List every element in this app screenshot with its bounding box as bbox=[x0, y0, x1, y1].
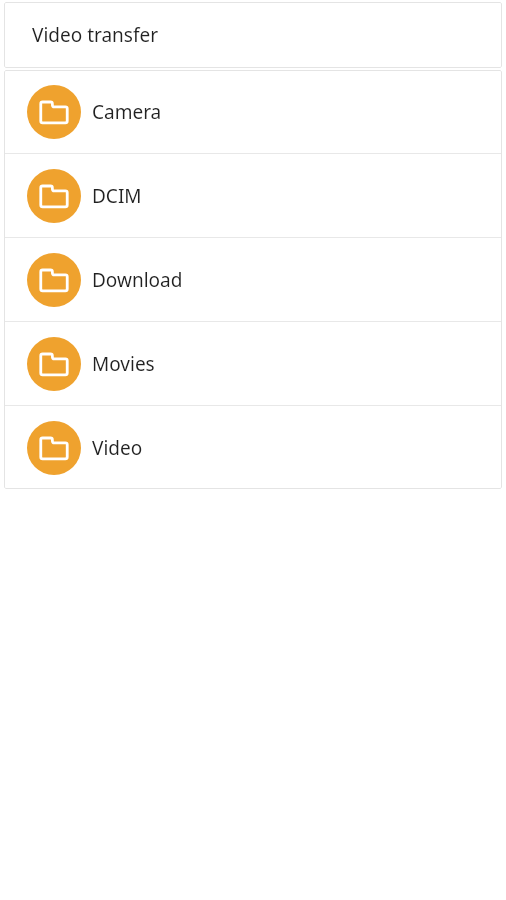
button[interactable]: Video bbox=[4, 406, 502, 489]
staticText: Movies bbox=[92, 351, 155, 377]
button[interactable]: Download bbox=[4, 238, 502, 321]
staticText: Video bbox=[92, 435, 143, 461]
button[interactable]: Camera bbox=[4, 70, 502, 153]
button[interactable]: Video transfer bbox=[4, 2, 502, 68]
staticText: Video transfer bbox=[32, 22, 159, 48]
button[interactable]: DCIM bbox=[4, 154, 502, 237]
staticText: DCIM bbox=[92, 183, 142, 209]
staticText: Camera bbox=[92, 99, 162, 125]
staticText: Download bbox=[92, 267, 183, 293]
button[interactable]: Movies bbox=[4, 322, 502, 405]
